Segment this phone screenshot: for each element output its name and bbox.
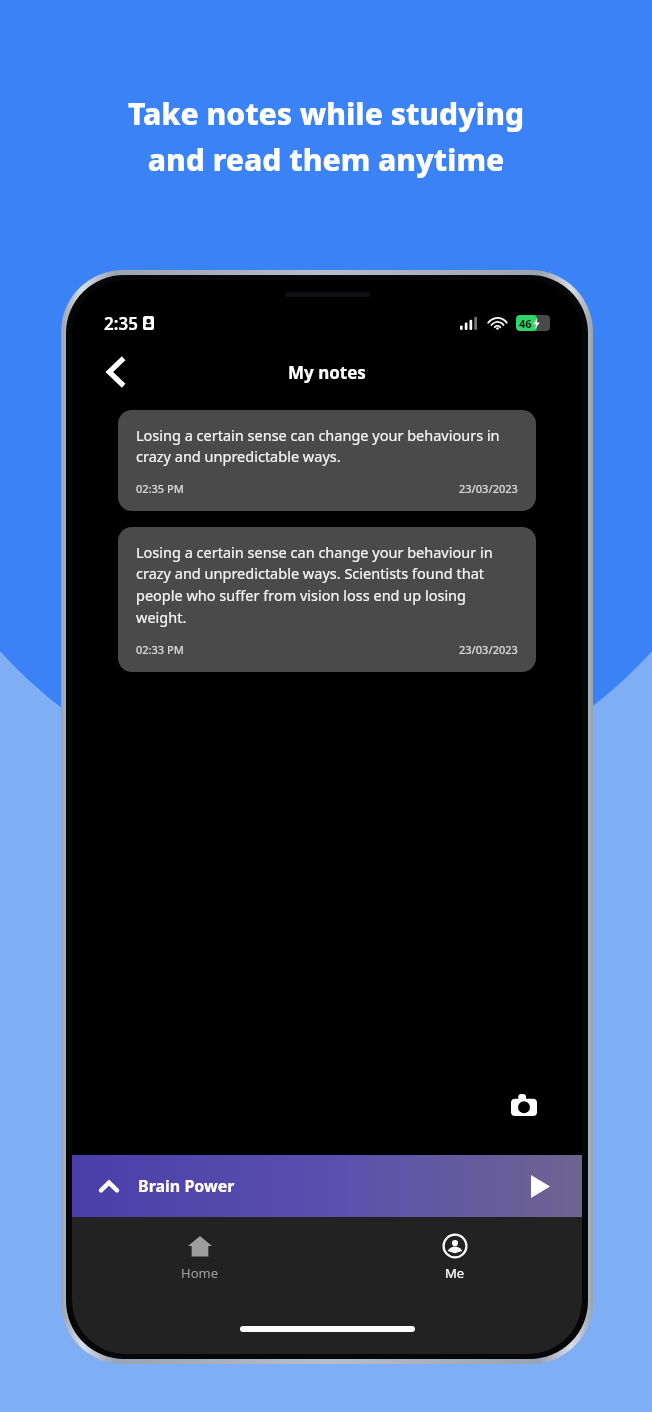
staticText: Home: [181, 1264, 218, 1282]
button[interactable]: Losing a certain sense can change your b…: [118, 410, 536, 511]
staticText: Brain Power: [138, 1175, 235, 1197]
staticText: Me: [445, 1264, 465, 1282]
button[interactable]: Losing a certain sense can change your b…: [118, 527, 536, 672]
staticText: 23/03/2023: [459, 642, 518, 657]
staticText: 2:35: [104, 312, 138, 335]
button[interactable]: Back: [92, 352, 138, 392]
staticText: Take notes while studying and read them …: [0, 93, 652, 180]
button[interactable]: Expand player: [72, 1155, 582, 1217]
staticText: Losing a certain sense can change your b…: [136, 425, 518, 467]
button[interactable]: Me: [327, 1229, 582, 1286]
staticText: 02:33 PM: [136, 642, 184, 657]
button[interactable]: Play: [518, 1164, 562, 1208]
staticText: 23/03/2023: [459, 481, 518, 496]
staticText: Losing a certain sense can change your b…: [136, 542, 518, 628]
button[interactable]: Home: [72, 1229, 327, 1286]
staticText: 02:35 PM: [136, 481, 184, 496]
staticText: 46: [519, 316, 532, 331]
button[interactable]: Camera: [504, 1085, 544, 1125]
button[interactable]: Expand player: [92, 1169, 126, 1203]
staticText: My notes: [288, 361, 366, 384]
